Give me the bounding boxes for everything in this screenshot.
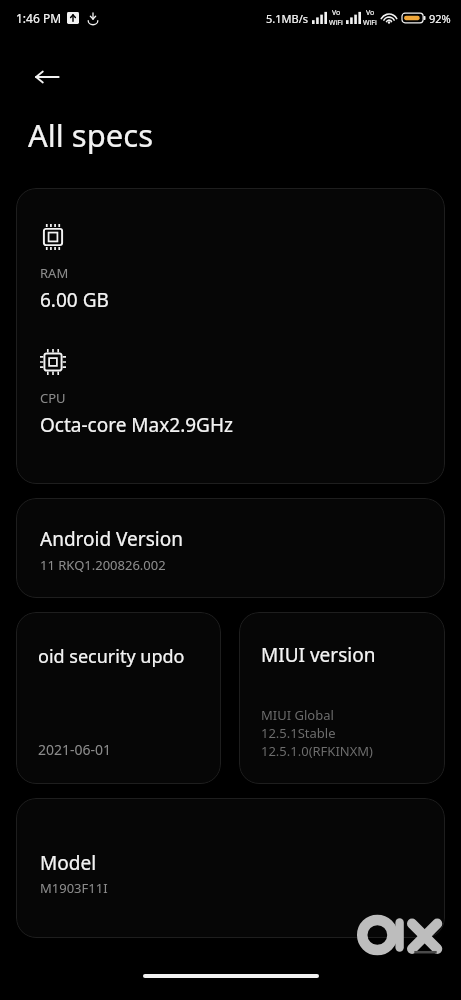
button[interactable]: RAM <box>16 188 445 484</box>
staticText: Vo <box>332 8 341 18</box>
staticText: WiFi <box>329 18 343 28</box>
staticText: 2021-06-01 <box>38 740 112 759</box>
button[interactable]: Android Version <box>16 498 445 598</box>
staticText: Android Version <box>40 526 183 552</box>
staticText: 1:46 PM <box>16 10 62 26</box>
staticText: RAM <box>40 264 69 282</box>
staticText: CPU <box>40 389 66 407</box>
button[interactable]: Back <box>30 60 64 94</box>
staticText: M1903F11I <box>40 879 108 897</box>
button[interactable]: MIUI version <box>239 612 445 784</box>
staticText: WiFi <box>363 18 377 28</box>
staticText: 6.00 GB <box>40 287 109 313</box>
button[interactable]: Model <box>16 798 445 938</box>
staticText: 11 RKQ1.200826.002 <box>40 556 166 574</box>
staticText: Vo <box>366 8 375 18</box>
staticText: oid security updo <box>38 644 185 669</box>
staticText: 12.5.1.0(RFKINXM) <box>261 742 374 760</box>
button[interactable]: oid security updo <box>16 612 221 784</box>
staticText: All specs <box>28 114 153 156</box>
staticText: Model <box>40 850 97 876</box>
staticText: 5.1MB/s <box>266 11 309 26</box>
staticText: 12.5.1Stable <box>261 724 336 742</box>
staticText: 92% <box>429 11 451 26</box>
staticText: Octa-core Max2.9GHz <box>40 412 233 438</box>
staticText: MIUI Global <box>261 706 334 724</box>
staticText: MIUI version <box>261 642 376 668</box>
